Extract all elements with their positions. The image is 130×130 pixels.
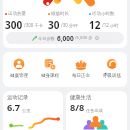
staticText: 运动热量 [8, 11, 26, 17]
staticText: 每日正念 [72, 73, 90, 79]
button[interactable]: 呼吸训练 [96, 52, 127, 87]
other: 健康管理 [13, 58, 25, 70]
staticText: 健康管理 [10, 73, 28, 79]
staticText: 运动记录 [7, 94, 29, 101]
button[interactable]: 运动记录 [3, 91, 63, 130]
staticText: 活动小时数 [92, 11, 115, 17]
button[interactable]: 今日步数 [6, 32, 124, 44]
staticText: /30 分钟 [61, 22, 78, 28]
button[interactable]: 每日正念 [65, 52, 96, 87]
other: 呼吸训练 [106, 58, 118, 70]
staticText: 300 [5, 18, 23, 29]
staticText: /12 小时 [102, 22, 119, 28]
staticText: /6,000 步 [75, 35, 93, 41]
button[interactable]: 健身课程 [34, 52, 65, 87]
staticText: 公里 [22, 108, 31, 113]
staticText: 30 [48, 18, 60, 29]
staticText: 6,000 [57, 34, 74, 43]
button[interactable]: 健康管理 [3, 52, 34, 87]
staticText: 今日步数 [38, 36, 55, 41]
staticText: 8/8 [70, 101, 85, 114]
staticText: 呼吸训练 [103, 73, 121, 79]
button[interactable]: 健康生活 [66, 91, 127, 130]
other: 健身课程 [44, 58, 56, 70]
other: 每日正念 [75, 58, 87, 70]
staticText: /300 千卡 [24, 22, 44, 28]
staticText: 12 [89, 18, 101, 29]
staticText: 任务达成 [86, 108, 103, 113]
staticText: 健身课程 [41, 73, 59, 79]
staticText: 健康生活 [70, 94, 92, 101]
staticText: 锻炼时长 [51, 11, 69, 17]
staticText: 6.7 [7, 101, 21, 114]
